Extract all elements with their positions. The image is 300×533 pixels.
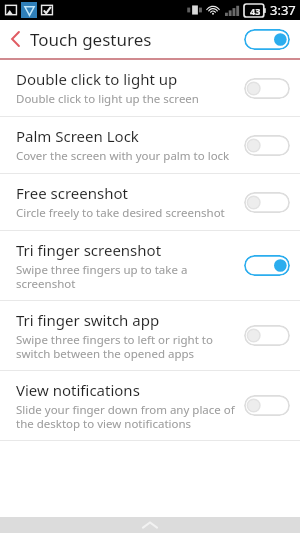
staticText: Swipe three fingers up to take a screens… bbox=[16, 262, 188, 291]
button[interactable]: Back bbox=[0, 20, 30, 58]
staticText: Tri finger switch app bbox=[16, 310, 160, 330]
staticText: Tri finger screenshot bbox=[16, 240, 162, 260]
staticText: Swipe three fingers to left or right to … bbox=[16, 332, 213, 361]
staticText: Double click to light up bbox=[16, 69, 178, 89]
staticText: 43 bbox=[250, 5, 261, 17]
button[interactable]: Tri finger screenshot bbox=[0, 231, 300, 300]
button[interactable]: Show navigation bar bbox=[130, 517, 170, 533]
staticText: Touch gestures bbox=[30, 28, 152, 51]
staticText: 3:37 bbox=[270, 1, 296, 19]
staticText: Slide your finger down from any place of… bbox=[16, 402, 235, 431]
button[interactable]: View notifications bbox=[0, 371, 300, 440]
staticText: Cover the screen with your palm to lock bbox=[16, 148, 230, 164]
staticText: Free screenshot bbox=[16, 183, 128, 203]
staticText: Double click to light up the screen bbox=[16, 91, 199, 107]
button[interactable]: Palm Screen Lock bbox=[0, 117, 300, 173]
button[interactable]: Free screenshot bbox=[0, 174, 300, 230]
button[interactable]: Tri finger switch app bbox=[0, 301, 300, 370]
staticText: Palm Screen Lock bbox=[16, 126, 139, 146]
button[interactable]: Double click to light up bbox=[0, 60, 300, 116]
staticText: Circle freely to take desired screenshot bbox=[16, 205, 225, 221]
button[interactable]: Touch gestures master switch bbox=[244, 29, 290, 50]
staticText: View notifications bbox=[16, 380, 140, 400]
